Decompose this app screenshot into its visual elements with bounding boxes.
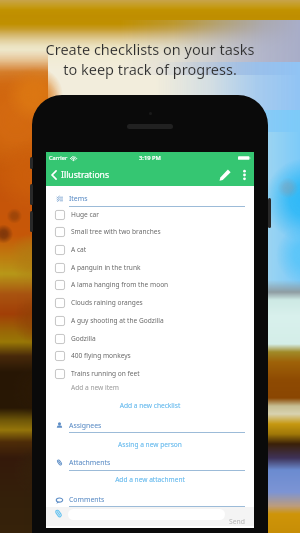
button[interactable]: Send xyxy=(226,507,248,526)
button[interactable]: Huge car xyxy=(46,206,254,224)
button[interactable]: A lama hanging from the moon xyxy=(46,276,254,294)
staticText: Huge car xyxy=(71,210,100,219)
button[interactable]: Attach file xyxy=(54,509,63,518)
button[interactable]: Godzilla xyxy=(46,330,254,348)
staticText: Comments xyxy=(69,495,105,504)
button[interactable]: More options xyxy=(234,165,254,185)
button[interactable]: Assing a new person xyxy=(46,435,254,454)
staticText: Add a new attachment xyxy=(46,475,254,484)
staticText: Send xyxy=(229,517,245,526)
staticText: Items xyxy=(69,194,88,203)
staticText: Add a new item xyxy=(71,383,119,392)
button[interactable]: A panguin in the trunk xyxy=(46,259,254,277)
button[interactable]: Small tree with two branches xyxy=(46,223,254,241)
button[interactable]: 400 flying monkeys xyxy=(46,347,254,365)
staticText: Assignees xyxy=(69,421,102,430)
staticText: Assing a new person xyxy=(46,440,254,449)
staticText: Add a new checklist xyxy=(46,401,254,410)
staticText: Clouds raining oranges xyxy=(71,298,143,307)
staticText: Small tree with two branches xyxy=(71,227,161,236)
button[interactable]: Add a new attachment xyxy=(46,470,254,489)
staticText: Trains running on feet xyxy=(71,369,140,378)
button[interactable]: Trains running on feet xyxy=(46,365,254,383)
staticText: Attachments xyxy=(69,458,111,467)
button[interactable]: Clouds raining oranges xyxy=(46,294,254,312)
staticText: Carrier xyxy=(49,154,68,162)
staticText: Create checklists on your tasks xyxy=(0,39,300,59)
button[interactable]: A cat xyxy=(46,241,254,259)
staticText: A lama hanging from the moon xyxy=(71,280,169,289)
staticText: to keep track of progress. xyxy=(0,59,300,79)
button[interactable]: A guy shooting at the Godzilla xyxy=(46,312,254,330)
staticText: 400 flying monkeys xyxy=(71,351,131,360)
button[interactable]: Illustrations xyxy=(46,169,118,181)
staticText: A guy shooting at the Godzilla xyxy=(71,316,164,325)
staticText: A cat xyxy=(71,245,87,254)
button[interactable]: Edit xyxy=(214,164,235,185)
staticText: Illustrations xyxy=(61,169,110,181)
staticText: 3:19 PM xyxy=(139,154,161,162)
staticText: A panguin in the trunk xyxy=(71,263,141,272)
button[interactable]: Add a new checklist xyxy=(46,397,254,416)
staticText: Godzilla xyxy=(71,334,96,343)
button[interactable]: Add a new item xyxy=(46,378,254,397)
